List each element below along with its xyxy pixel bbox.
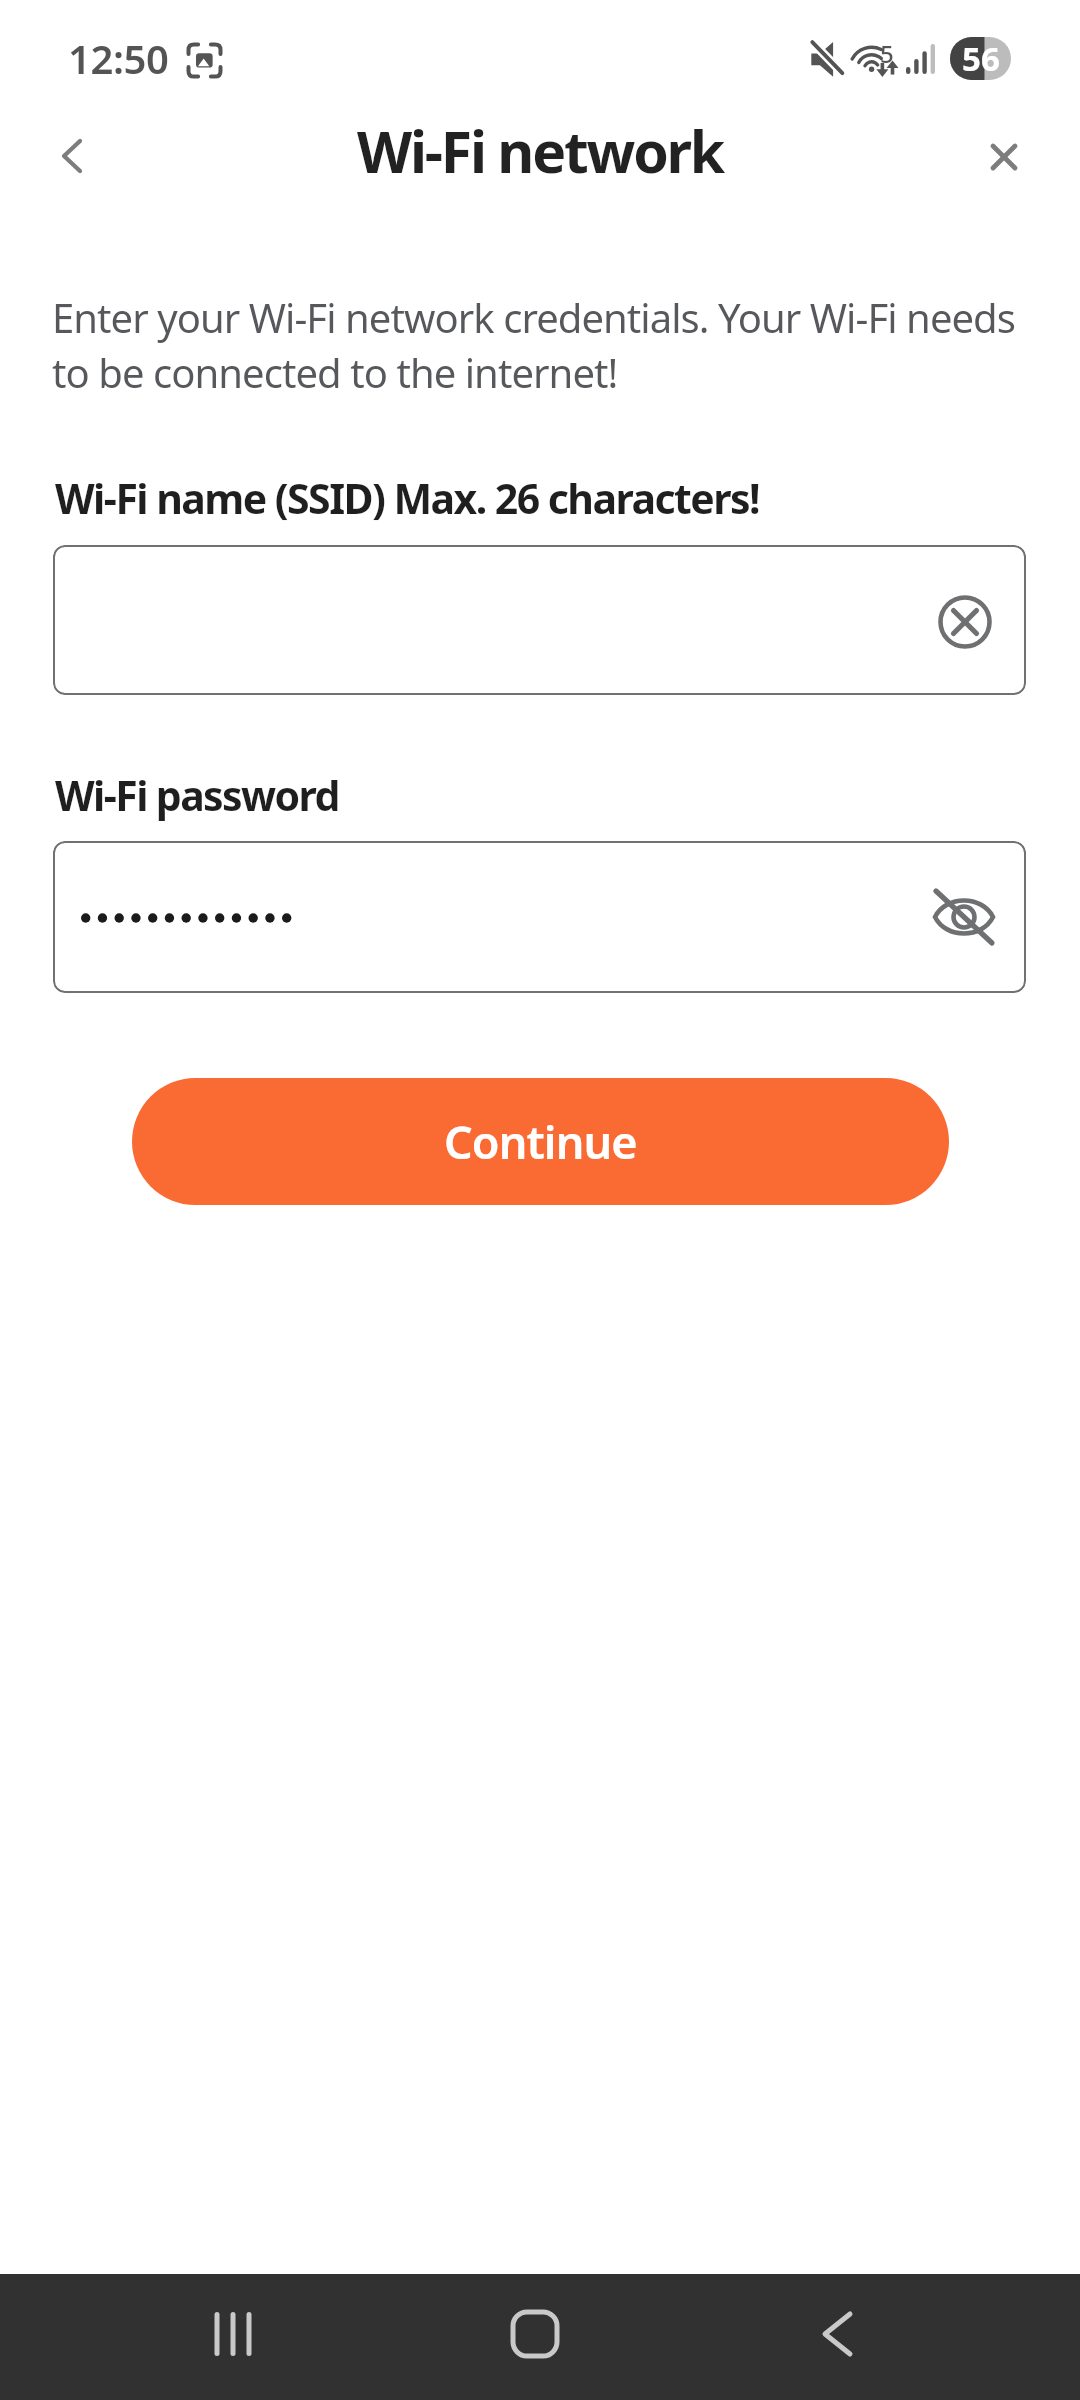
button[interactable]: Wi-Fi password input: [53, 841, 1026, 993]
staticText: Wi-Fi name (SSID) Max. 26 characters!: [55, 470, 760, 526]
button[interactable]: Show password: [932, 885, 996, 949]
staticText: 56: [962, 37, 1000, 79]
staticText: 12:50: [68, 31, 169, 85]
staticText: Continue: [444, 1111, 637, 1172]
button[interactable]: Continue: [132, 1078, 949, 1205]
button[interactable]: Home: [485, 2284, 585, 2384]
staticText: Wi-Fi password: [55, 767, 339, 823]
button[interactable]: Clear text: [937, 594, 993, 650]
button[interactable]: Back: [787, 2284, 887, 2384]
button[interactable]: Back: [36, 120, 108, 192]
button[interactable]: Wi-Fi name (SSID) input: [53, 545, 1026, 695]
staticText: 5: [880, 37, 894, 70]
button[interactable]: Recents: [183, 2284, 283, 2384]
button[interactable]: Close: [968, 121, 1040, 193]
staticText: Wi-Fi network: [357, 112, 724, 190]
staticText: Enter your Wi-Fi network credentials. Yo…: [52, 290, 1052, 400]
